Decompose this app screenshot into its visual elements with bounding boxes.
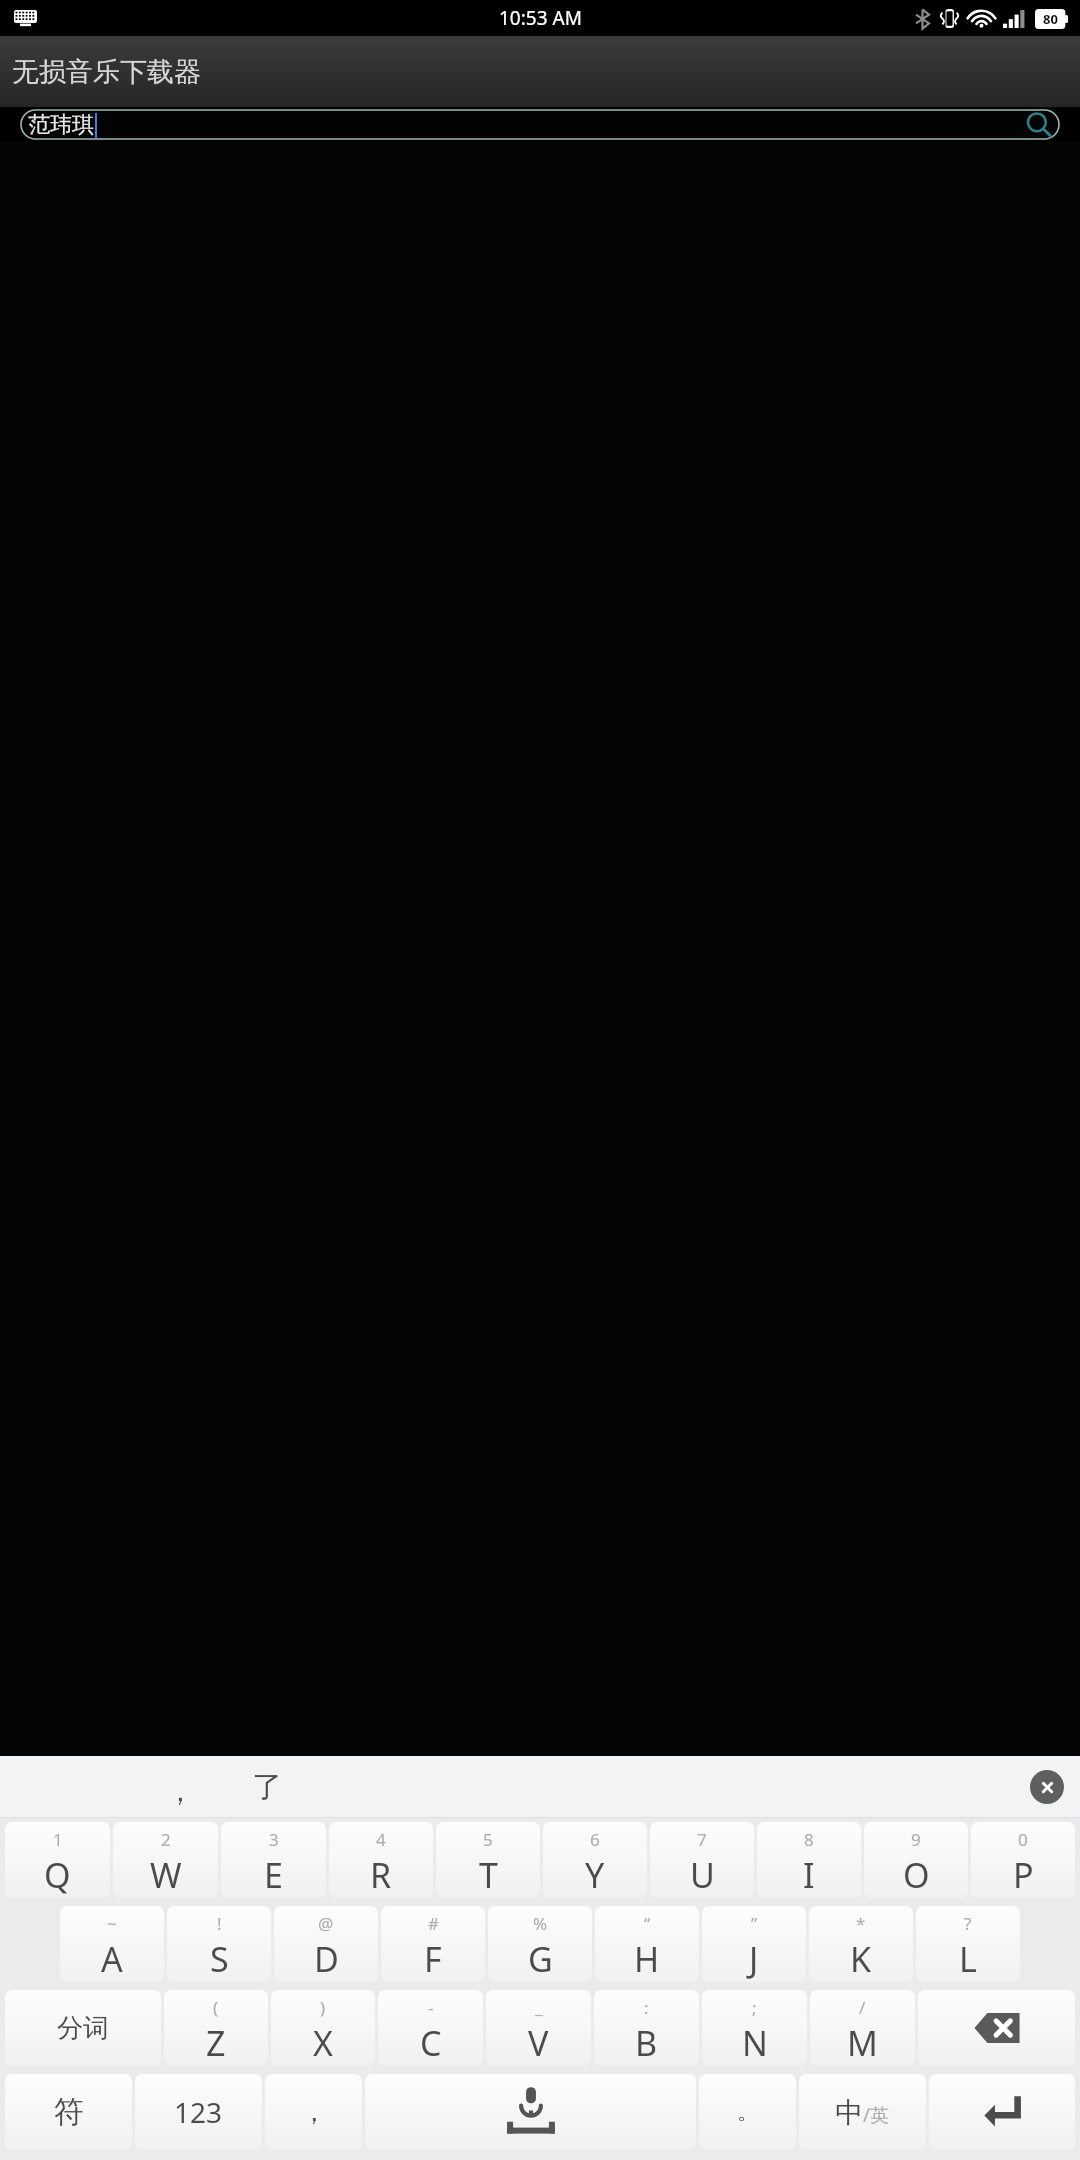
- button[interactable]: Search: [1025, 111, 1052, 138]
- button[interactable]: _: [486, 1990, 591, 2066]
- staticText: E: [264, 1852, 283, 1898]
- staticText: B: [635, 2020, 658, 2066]
- staticText: J: [749, 1936, 759, 1982]
- staticText: !: [217, 1912, 222, 1935]
- staticText: 6: [590, 1828, 600, 1851]
- staticText: 分词: [57, 2012, 109, 2045]
- button[interactable]: Space: [365, 2074, 696, 2150]
- button[interactable]: ”: [702, 1906, 806, 1982]
- staticText: ?: [964, 1912, 972, 1935]
- staticText: Z: [206, 2020, 226, 2066]
- staticText: (: [213, 1996, 219, 2019]
- staticText: I: [803, 1852, 815, 1898]
- button[interactable]: ~: [60, 1906, 164, 1982]
- staticText: V: [528, 2020, 549, 2066]
- staticText: “: [644, 1912, 651, 1935]
- staticText: 范玮琪: [28, 111, 94, 139]
- staticText: Y: [585, 1852, 605, 1898]
- button[interactable]: @: [274, 1906, 378, 1982]
- staticText: N: [742, 2020, 768, 2066]
- button[interactable]: :: [594, 1990, 699, 2066]
- button[interactable]: 了: [252, 1768, 282, 1806]
- button[interactable]: 9: [864, 1822, 968, 1898]
- staticText: C: [420, 2020, 442, 2066]
- button[interactable]: 3: [221, 1822, 326, 1898]
- button[interactable]: 8: [757, 1822, 861, 1898]
- staticText: #: [428, 1912, 439, 1935]
- staticText: X: [313, 2020, 333, 2066]
- button[interactable]: ?: [916, 1906, 1020, 1982]
- button[interactable]: 2: [113, 1822, 218, 1898]
- button[interactable]: -: [378, 1990, 483, 2066]
- staticText: S: [210, 1936, 229, 1982]
- staticText: P: [1013, 1852, 1034, 1898]
- staticText: 10:53 AM: [499, 5, 582, 31]
- staticText: 2: [161, 1828, 171, 1851]
- button[interactable]: Chinese English toggle: [799, 2074, 926, 2150]
- button[interactable]: “: [595, 1906, 699, 1982]
- button[interactable]: [21, 110, 1059, 139]
- button[interactable]: 。: [699, 2074, 796, 2150]
- staticText: U: [690, 1852, 715, 1898]
- button[interactable]: Enter: [929, 2074, 1075, 2150]
- staticText: R: [370, 1852, 392, 1898]
- staticText: Q: [44, 1852, 71, 1898]
- button[interactable]: 123: [135, 2074, 262, 2150]
- staticText: 5: [483, 1828, 493, 1851]
- staticText: 123: [174, 2093, 223, 2131]
- button[interactable]: 4: [329, 1822, 433, 1898]
- button[interactable]: !: [167, 1906, 271, 1982]
- staticText: 3: [269, 1828, 279, 1851]
- button[interactable]: %: [488, 1906, 592, 1982]
- staticText: 。: [737, 2098, 759, 2126]
- staticText: W: [150, 1852, 182, 1898]
- staticText: _: [535, 1996, 543, 2019]
- staticText: 1: [53, 1828, 63, 1851]
- staticText: 符: [54, 2093, 84, 2131]
- staticText: O: [903, 1852, 930, 1898]
- staticText: M: [847, 2020, 878, 2066]
- staticText: L: [959, 1936, 977, 1982]
- staticText: H: [634, 1936, 660, 1982]
- staticText: /: [859, 1996, 866, 2019]
- staticText: G: [528, 1936, 553, 1982]
- staticText: 8: [804, 1828, 814, 1851]
- staticText: 中: [835, 2095, 863, 2130]
- staticText: 无损音乐下载器: [12, 55, 201, 89]
- button[interactable]: #: [381, 1906, 485, 1982]
- button[interactable]: *: [809, 1906, 913, 1982]
- staticText: -: [428, 1996, 434, 2019]
- button[interactable]: (: [164, 1990, 268, 2066]
- staticText: :: [644, 1996, 649, 2019]
- other: Keyboard: [14, 10, 37, 27]
- staticText: K: [850, 1936, 872, 1982]
- button[interactable]: Backspace: [918, 1990, 1075, 2066]
- staticText: D: [314, 1936, 339, 1982]
- staticText: @: [318, 1912, 334, 1935]
- button[interactable]: 6: [543, 1822, 647, 1898]
- staticText: ”: [751, 1912, 758, 1935]
- button[interactable]: 分词: [5, 1990, 161, 2066]
- button[interactable]: 0: [971, 1822, 1075, 1898]
- button[interactable]: /: [810, 1990, 915, 2066]
- button[interactable]: 符: [5, 2074, 132, 2150]
- staticText: 7: [697, 1828, 707, 1851]
- staticText: /英: [863, 2102, 890, 2128]
- button[interactable]: Close keyboard: [1030, 1770, 1064, 1804]
- staticText: A: [101, 1936, 123, 1982]
- staticText: 4: [376, 1828, 386, 1851]
- staticText: ;: [752, 1996, 757, 2019]
- button[interactable]: 7: [650, 1822, 754, 1898]
- staticText: 0: [1018, 1828, 1028, 1851]
- staticText: ): [320, 1996, 326, 2019]
- staticText: T: [479, 1852, 498, 1898]
- staticText: %: [533, 1912, 548, 1935]
- button[interactable]: ): [271, 1990, 375, 2066]
- staticText: ，: [301, 2096, 327, 2129]
- button[interactable]: ，: [265, 2074, 362, 2150]
- button[interactable]: ;: [702, 1990, 807, 2066]
- button[interactable]: 1: [5, 1822, 110, 1898]
- button[interactable]: 5: [436, 1822, 540, 1898]
- button[interactable]: ，: [166, 1774, 194, 1809]
- staticText: F: [424, 1936, 442, 1982]
